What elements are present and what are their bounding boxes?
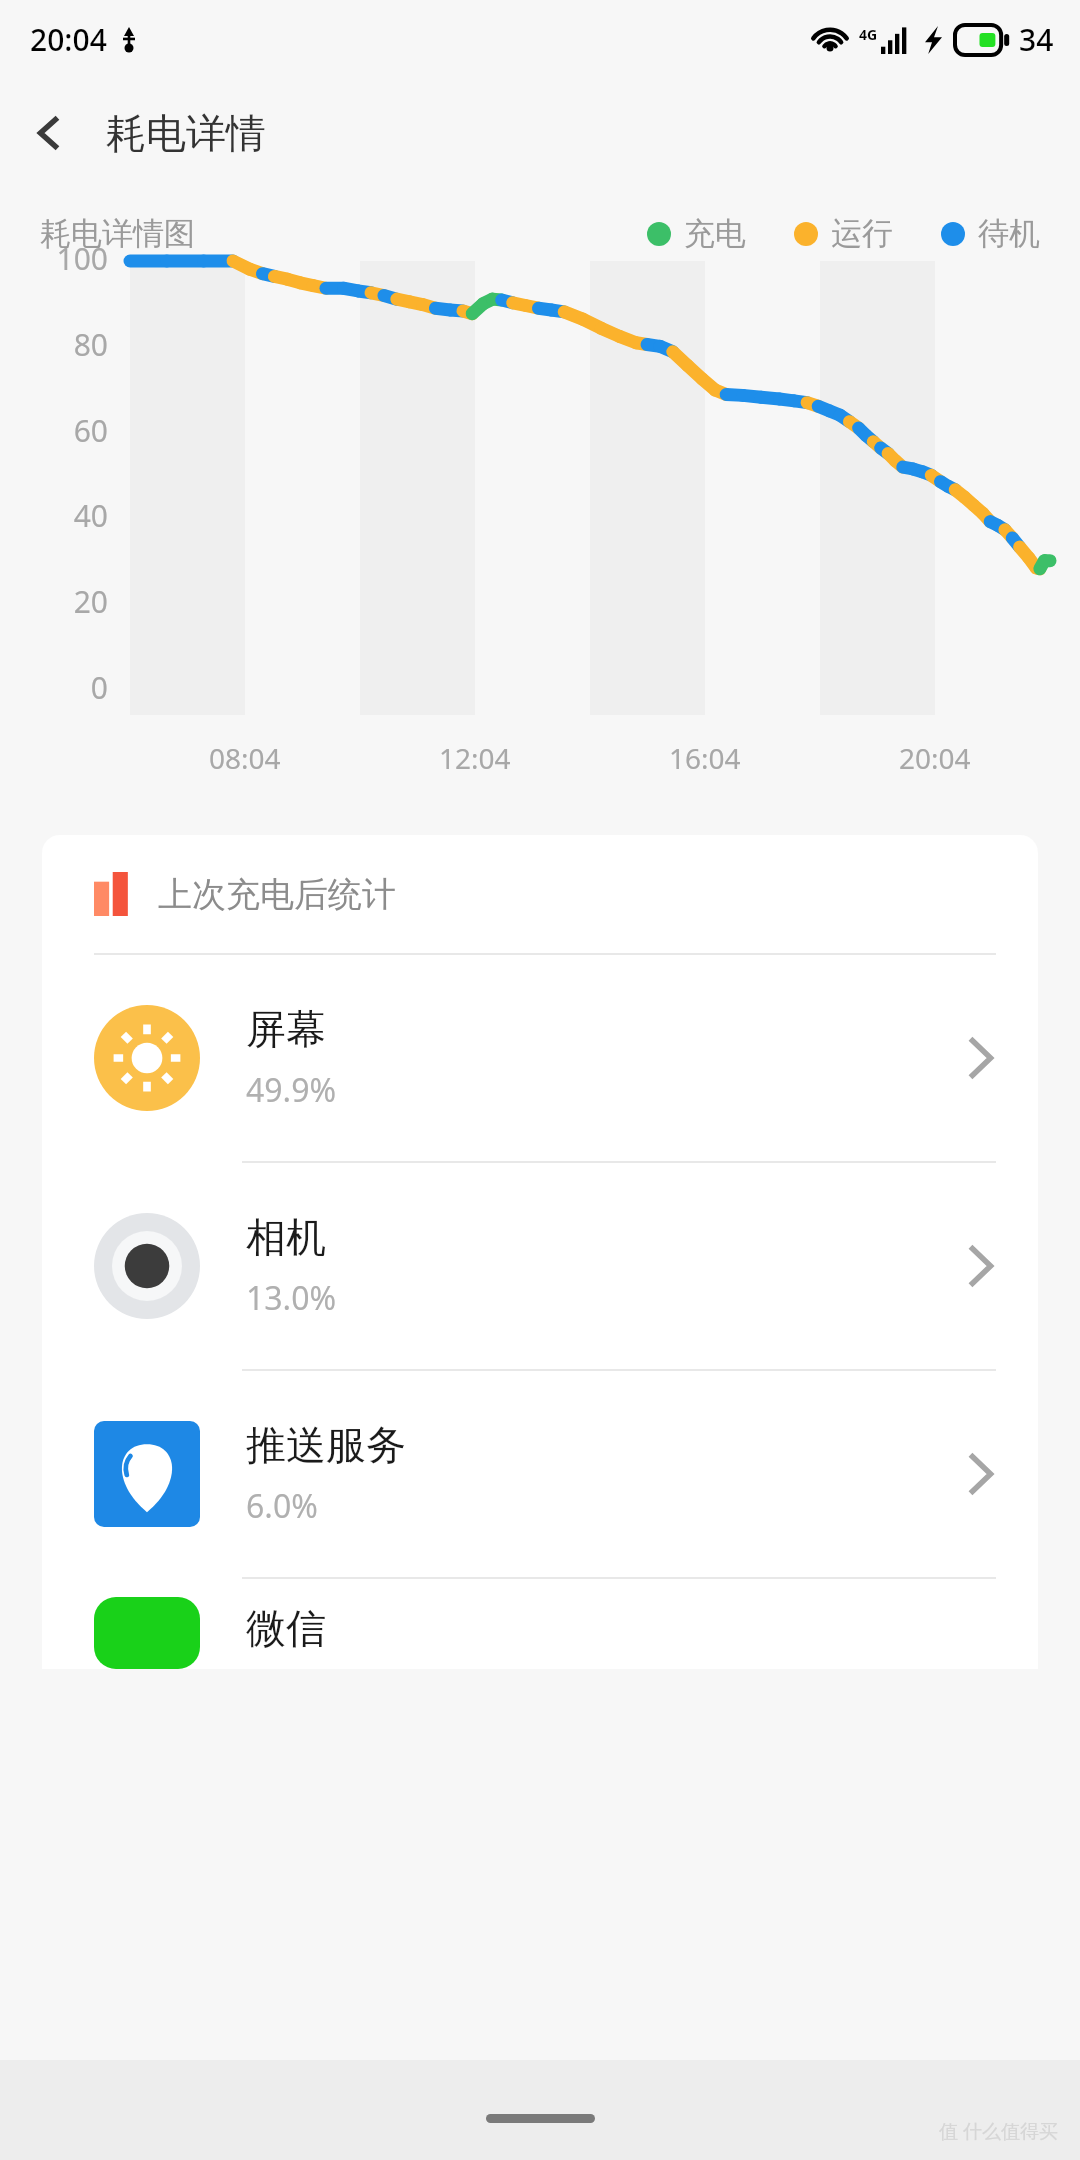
staticText: 屏幕 [246, 1004, 326, 1054]
staticText: 运行 [831, 214, 893, 253]
button[interactable]: 推送服务 [42, 1371, 1038, 1577]
staticText: 40 [0, 495, 108, 536]
staticText: 60 [0, 410, 108, 451]
staticText: 充电 [684, 214, 746, 253]
staticText: 34 [1019, 19, 1054, 60]
button[interactable]: Back [14, 97, 86, 169]
staticText: 12:04 [439, 739, 511, 777]
staticText: 上次充电后统计 [158, 873, 396, 916]
staticText: 20:04 [899, 739, 971, 777]
staticText: 13.0% [246, 1276, 337, 1320]
staticText: 100 [0, 238, 108, 279]
staticText: 待机 [978, 214, 1040, 253]
button[interactable]: 相机 [42, 1163, 1038, 1369]
staticText: 80 [0, 324, 108, 365]
staticText: 耗电详情 [106, 108, 266, 158]
staticText: 49.9% [246, 1068, 337, 1112]
staticText: 20 [0, 581, 108, 622]
button[interactable]: 屏幕 [42, 955, 1038, 1161]
staticText: 耗电详情图 [40, 214, 195, 253]
staticText: 推送服务 [246, 1420, 406, 1470]
staticText: 相机 [246, 1212, 326, 1262]
staticText: 4G [859, 25, 878, 44]
staticText: 16:04 [669, 739, 741, 777]
staticText: 20:04 [30, 19, 107, 60]
staticText: 08:04 [209, 739, 281, 777]
staticText: 6.0% [246, 1484, 318, 1528]
staticText: 微信 [246, 1603, 326, 1653]
staticText: 值 什么值得买 [939, 2118, 1058, 2144]
staticText: 0 [0, 667, 108, 708]
